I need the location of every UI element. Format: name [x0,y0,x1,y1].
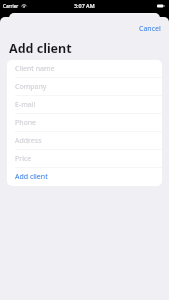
button[interactable]: Cancel [131,21,169,37]
button[interactable]: Company [7,78,162,96]
staticText: Carrier [3,3,19,9]
staticText: Add client [9,40,72,57]
button[interactable]: Add client [7,168,162,186]
other: Wi-Fi signal [21,3,27,8]
button[interactable]: Client name [7,60,162,78]
staticText: 3:07 AM [74,2,95,9]
staticText: Address [15,136,42,146]
staticText: Cancel [139,24,161,34]
staticText: E-mail [15,100,36,110]
staticText: Price [15,154,32,164]
button[interactable]: Address [7,132,162,150]
staticText: Add client [15,172,48,182]
other: Battery [157,3,165,9]
button[interactable]: Price [7,150,162,168]
button[interactable]: Phone [7,114,162,132]
staticText: Phone [15,118,37,128]
staticText: Company [15,82,47,92]
staticText: Client name [15,64,55,74]
button[interactable]: E-mail [7,96,162,114]
